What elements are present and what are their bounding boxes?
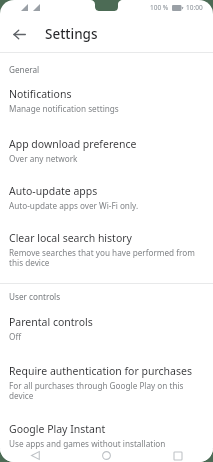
staticText: Off — [9, 331, 22, 342]
staticText: User controls — [9, 291, 61, 302]
staticText: 100 % — [150, 3, 169, 12]
staticText: General — [9, 64, 40, 75]
staticText: Google Play Instant — [9, 422, 106, 436]
button[interactable]: App download preference — [0, 137, 213, 164]
staticText: Manage notification settings — [9, 103, 119, 114]
staticText: Notifications — [9, 87, 72, 101]
staticText: Settings — [45, 25, 98, 43]
staticText: Auto-update apps over Wi-Fi only. — [9, 200, 139, 211]
button[interactable]: Notifications — [0, 87, 213, 114]
button[interactable]: Parental controls — [0, 315, 213, 342]
staticText: Require authentication for purchases — [9, 364, 192, 378]
button[interactable]: Clear local search history — [0, 231, 213, 269]
staticText: For all purchases through Google Play on… — [9, 380, 205, 402]
button[interactable]: Home — [71, 449, 142, 462]
staticText: Clear local search history — [9, 231, 132, 245]
staticText: Remove searches that you have performed … — [9, 247, 205, 269]
button[interactable]: Back — [0, 449, 71, 462]
staticText: Parental controls — [9, 315, 93, 329]
button[interactable]: Google Play Instant — [0, 422, 213, 449]
staticText: 10:00 — [186, 3, 203, 12]
button[interactable]: Require authentication for purchases — [0, 364, 213, 402]
button[interactable]: Auto-update apps — [0, 184, 213, 211]
button[interactable]: Recent apps — [142, 449, 213, 462]
staticText: Auto-update apps — [9, 184, 98, 198]
staticText: App download preference — [9, 137, 137, 151]
button[interactable]: Back — [7, 22, 31, 46]
staticText: Over any network — [9, 153, 78, 164]
staticText: Use apps and games without installation — [9, 438, 166, 449]
